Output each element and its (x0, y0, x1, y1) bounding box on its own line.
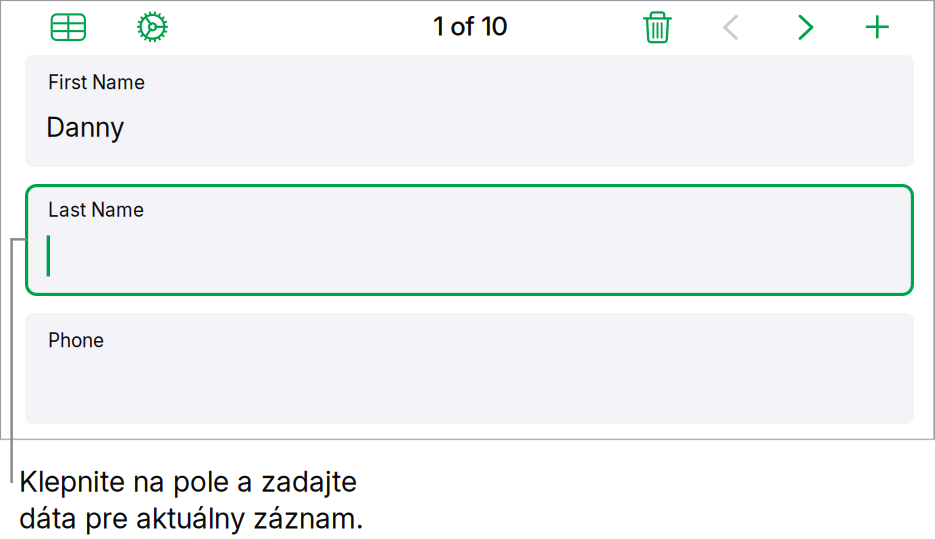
staticText: First Name (48, 71, 145, 94)
button[interactable]: Tables (40, 5, 96, 49)
button[interactable]: Last Name (25, 184, 914, 296)
button[interactable]: Next record (782, 5, 830, 49)
button[interactable]: Add record (853, 5, 901, 49)
staticText: 1 of 10 (433, 10, 508, 42)
staticText: Last Name (48, 198, 144, 221)
button[interactable]: First Name (25, 55, 914, 167)
button[interactable]: Previous record (706, 5, 754, 49)
staticText: Klepnite na pole a zadajte (19, 464, 357, 498)
button[interactable]: Phone (25, 313, 914, 424)
staticText: Danny (46, 111, 125, 143)
button[interactable]: Format (125, 5, 179, 49)
button[interactable]: Delete (631, 5, 683, 49)
staticText: dáta pre aktuálny záznam. (19, 501, 363, 535)
staticText: Phone (48, 329, 104, 352)
